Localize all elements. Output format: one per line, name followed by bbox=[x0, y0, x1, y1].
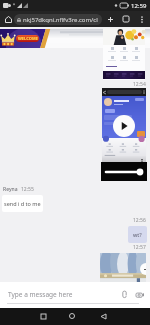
staticText: wt? bbox=[133, 231, 142, 238]
button[interactable] bbox=[103, 28, 145, 80]
staticText: 12:54 bbox=[133, 81, 146, 88]
button[interactable]: Home bbox=[64, 308, 80, 324]
staticText: Reyna bbox=[3, 186, 18, 193]
button[interactable]: Back bbox=[95, 308, 111, 324]
button[interactable]: Attach file bbox=[118, 288, 131, 301]
staticText: 12:59 bbox=[131, 2, 147, 10]
button[interactable]: Forward bbox=[140, 263, 146, 275]
staticText: 12:57 bbox=[133, 244, 146, 251]
button[interactable]: Recent apps bbox=[35, 308, 51, 324]
button[interactable]: New tab bbox=[102, 11, 118, 27]
button[interactable]: Play video bbox=[113, 115, 135, 137]
button[interactable]: Forward bbox=[100, 253, 146, 282]
button[interactable]: WELCOME bbox=[0, 29, 150, 48]
staticText: WELCOME bbox=[18, 36, 38, 41]
button[interactable]: Camera bbox=[133, 288, 146, 301]
staticText: 12:55 bbox=[21, 186, 34, 193]
staticText: Type a message here bbox=[8, 290, 118, 299]
button[interactable]: send i d to me bbox=[2, 195, 43, 212]
staticText: send i d to me bbox=[4, 200, 41, 207]
staticText: nkj57dkqni.nflfv3re.com/cl bbox=[23, 16, 98, 24]
button[interactable]: wt? bbox=[128, 226, 147, 243]
button[interactable]: Tabs bbox=[118, 11, 134, 27]
staticText: 12:56 bbox=[133, 217, 146, 224]
button[interactable]: nkj57dkqni.nflfv3re.com/cl bbox=[14, 14, 102, 25]
button[interactable]: Play video bbox=[101, 88, 147, 181]
button[interactable]: More options bbox=[134, 11, 150, 27]
button[interactable]: Home bbox=[2, 13, 14, 25]
